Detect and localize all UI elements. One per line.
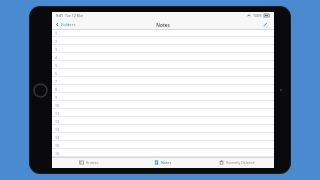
button[interactable]: 7 — [52, 77, 274, 85]
button[interactable]: Folders — [55, 19, 76, 30]
staticText: Folders — [61, 22, 76, 28]
staticText: Notes — [161, 160, 172, 165]
button[interactable]: 6 — [52, 69, 274, 77]
staticText: 9:41 — [56, 13, 63, 18]
button[interactable]: Notes — [126, 157, 200, 168]
button[interactable]: 15 — [52, 141, 274, 149]
staticText: 10 — [55, 103, 60, 108]
staticText: 100% — [253, 13, 262, 18]
staticText: 7 — [55, 79, 58, 84]
button[interactable]: 9 — [52, 93, 274, 101]
staticText: 4 — [55, 55, 58, 60]
button[interactable]: 4 — [52, 53, 274, 61]
button[interactable]: 10 — [52, 101, 274, 109]
staticText: 3 — [55, 47, 58, 52]
button[interactable]: 11 — [52, 109, 274, 117]
button[interactable]: Home — [34, 84, 47, 97]
button[interactable]: 8 — [52, 85, 274, 93]
staticText: 15 — [55, 143, 60, 148]
button[interactable]: 13 — [52, 125, 274, 133]
staticText: 5 — [55, 63, 58, 68]
button[interactable]: New note — [261, 20, 270, 29]
staticText: Recently Deleted — [226, 160, 255, 165]
staticText: Tue 12 Mar — [65, 13, 84, 18]
button[interactable]: Recently Deleted — [200, 157, 274, 168]
staticText: Browse — [86, 160, 99, 165]
staticText: Notes — [156, 22, 170, 28]
staticText: 14 — [55, 135, 60, 140]
button[interactable]: 3 — [52, 45, 274, 53]
button[interactable]: 5 — [52, 61, 274, 69]
staticText: 13 — [55, 127, 60, 132]
staticText: 9 — [55, 95, 58, 100]
button[interactable]: 16 — [52, 149, 274, 157]
staticText: 1 — [55, 31, 58, 36]
button[interactable]: 1 — [52, 30, 274, 37]
staticText: 8 — [55, 87, 58, 92]
staticText: 11 — [55, 111, 60, 116]
staticText: 16 — [55, 151, 60, 156]
staticText: 2 — [55, 39, 58, 44]
staticText: 6 — [55, 71, 58, 76]
button[interactable]: 2 — [52, 37, 274, 45]
button[interactable]: 12 — [52, 117, 274, 125]
button[interactable]: 14 — [52, 133, 274, 141]
staticText: 12 — [55, 119, 60, 124]
button[interactable]: Browse — [52, 157, 126, 168]
